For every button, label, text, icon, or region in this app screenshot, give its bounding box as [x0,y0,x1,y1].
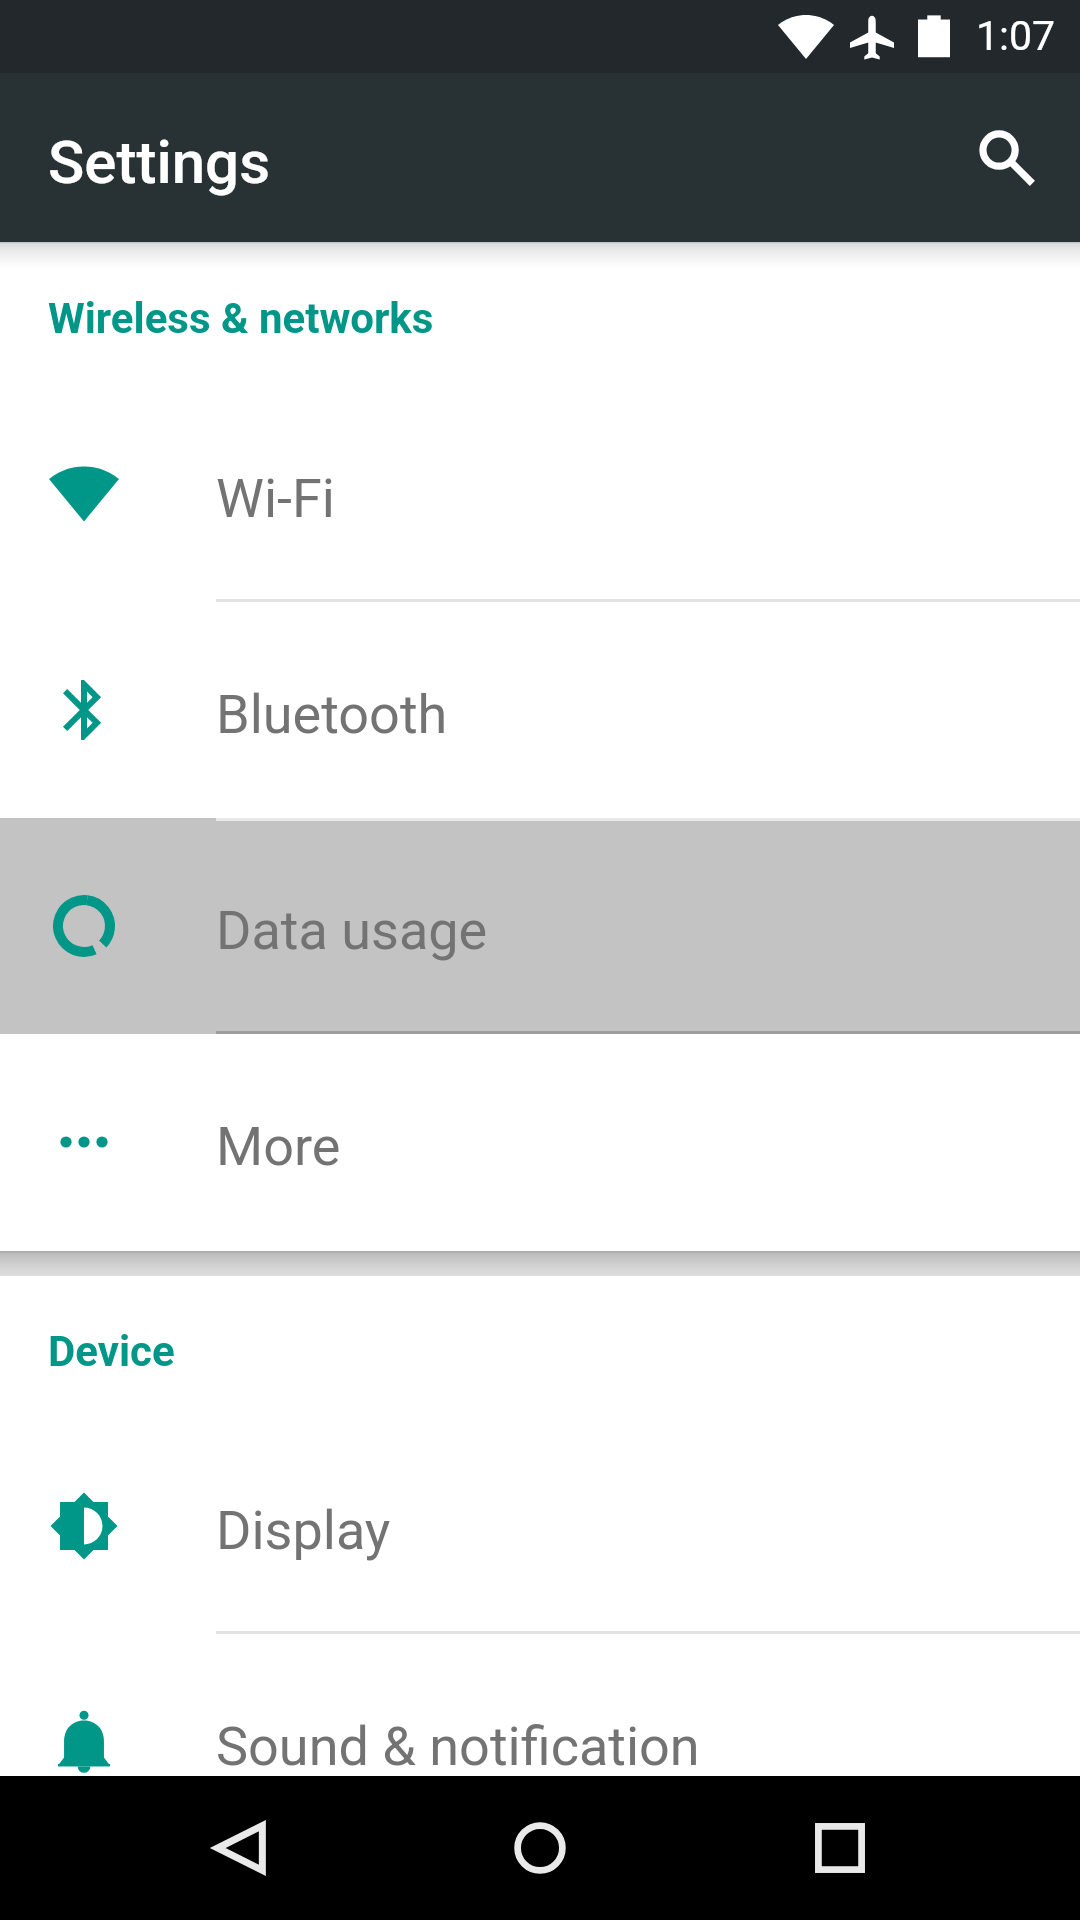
staticText: Bluetooth [216,683,448,746]
staticText: Data usage [216,899,488,962]
button[interactable]: Wi-Fi [0,386,1080,602]
staticText: Display [216,1499,391,1562]
button[interactable]: Bluetooth [0,602,1080,818]
button[interactable]: Home [470,1778,610,1918]
button[interactable]: Back [170,1778,310,1918]
staticText: 1:07 [976,12,1056,60]
staticText: Wi-Fi [216,467,335,530]
button[interactable]: Data usage [0,818,1080,1034]
button[interactable]: Search [958,108,1068,218]
staticText: Wireless & networks [48,294,434,343]
staticText: Settings [48,127,271,197]
button[interactable]: More [0,1034,1080,1250]
staticText: Device [48,1327,175,1376]
staticText: More [216,1115,341,1178]
button[interactable]: Display [0,1418,1080,1634]
staticText: Sound & notification [216,1715,700,1776]
button[interactable]: Sound & notification [0,1634,1080,1776]
button[interactable]: Recents [770,1778,910,1918]
